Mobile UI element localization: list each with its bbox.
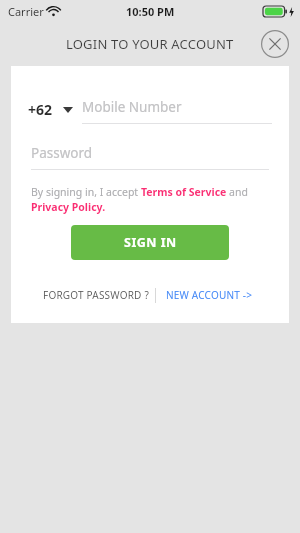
staticText: Password bbox=[31, 144, 93, 162]
button[interactable]: NEW ACCOUNT -> bbox=[156, 284, 263, 306]
staticText: Carrier bbox=[8, 4, 44, 19]
staticText: Mobile Number bbox=[82, 98, 182, 116]
staticText: SIGN IN bbox=[124, 234, 177, 251]
staticText: +62 bbox=[28, 100, 53, 119]
button[interactable]: Close bbox=[261, 30, 289, 58]
staticText: LOGIN TO YOUR ACCOUNT bbox=[66, 35, 234, 53]
button[interactable]: FORGOT PASSWORD ? bbox=[37, 284, 155, 306]
staticText: FORGOT PASSWORD ? bbox=[43, 288, 149, 302]
button[interactable]: +62 bbox=[28, 100, 73, 119]
staticText: By signing in, I accept Terms of Service… bbox=[31, 185, 271, 214]
staticText: NEW ACCOUNT -> bbox=[166, 288, 253, 302]
button[interactable]: Password bbox=[31, 140, 269, 170]
button[interactable]: Mobile Number bbox=[82, 94, 272, 124]
staticText: 10:50 PM bbox=[126, 4, 175, 19]
button[interactable]: SIGN IN bbox=[71, 225, 229, 260]
